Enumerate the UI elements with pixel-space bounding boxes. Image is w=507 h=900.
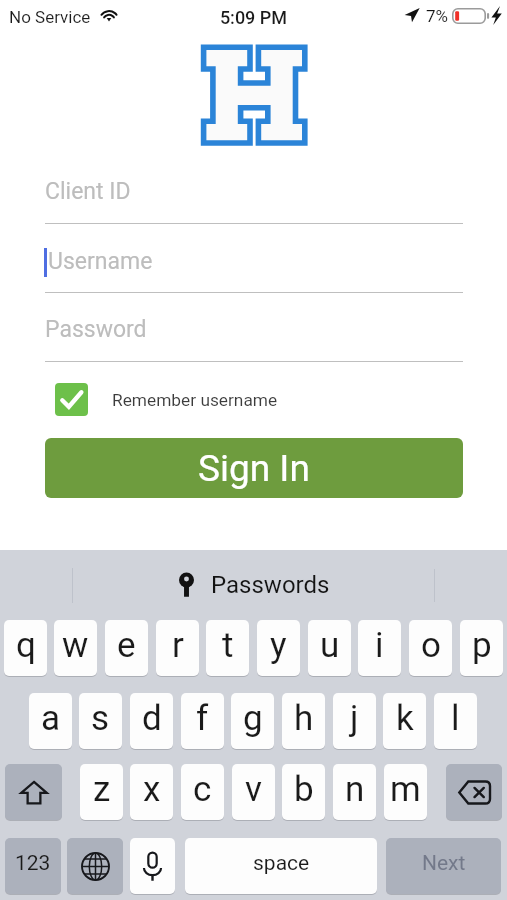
button[interactable]: Passwords [178, 571, 330, 599]
button[interactable]: Dictate [130, 838, 175, 894]
button[interactable]: z [80, 764, 123, 820]
button[interactable]: Client ID [45, 173, 463, 224]
staticText: k [396, 698, 414, 739]
staticText: w [62, 625, 89, 666]
button[interactable]: Sign In [45, 438, 463, 498]
button[interactable]: space [185, 838, 377, 894]
button[interactable]: n [333, 764, 376, 820]
staticText: Username [48, 248, 153, 275]
staticText: 7% [426, 6, 449, 26]
button[interactable]: g [231, 693, 274, 749]
button[interactable]: k [383, 693, 426, 749]
staticText: m [390, 769, 421, 810]
button[interactable]: Username [45, 242, 463, 293]
staticText: e [117, 625, 136, 666]
button[interactable]: s [79, 693, 122, 749]
staticText: Sign In [198, 447, 310, 490]
staticText: u [320, 625, 340, 666]
button[interactable]: u [308, 620, 351, 676]
button[interactable]: r [156, 620, 199, 676]
staticText: c [193, 769, 212, 810]
button[interactable]: j [333, 693, 376, 749]
button[interactable]: l [434, 693, 477, 749]
staticText: d [142, 698, 162, 739]
button[interactable]: a [29, 693, 72, 749]
button[interactable]: f [181, 693, 224, 749]
staticText: f [196, 698, 209, 739]
staticText: t [222, 625, 234, 666]
staticText: x [143, 769, 161, 810]
button[interactable]: Password [45, 311, 463, 362]
button[interactable]: y [257, 620, 300, 676]
button[interactable]: Shift [5, 764, 62, 820]
button[interactable]: 123 [5, 838, 61, 894]
button[interactable]: q [4, 620, 47, 676]
button[interactable]: v [232, 764, 275, 820]
staticText: y [270, 625, 287, 666]
staticText: l [451, 698, 460, 739]
button[interactable]: d [130, 693, 173, 749]
staticText: n [345, 769, 365, 810]
button[interactable]: Change keyboard [67, 838, 123, 894]
button[interactable]: i [358, 620, 401, 676]
staticText: Next [422, 851, 466, 876]
staticText: Remember username [112, 390, 278, 410]
staticText: Password [45, 316, 147, 343]
staticText: a [41, 698, 61, 739]
button[interactable]: m [384, 764, 427, 820]
button[interactable]: c [181, 764, 224, 820]
button[interactable]: t [206, 620, 249, 676]
button[interactable]: Remember username [55, 383, 278, 416]
staticText: h [294, 698, 314, 739]
staticText: g [243, 698, 263, 739]
staticText: p [472, 625, 492, 666]
button[interactable]: e [105, 620, 148, 676]
button[interactable]: b [282, 764, 325, 820]
staticText: 5:09 PM [0, 7, 507, 28]
staticText: z [93, 769, 111, 810]
staticText: Passwords [211, 571, 330, 599]
button[interactable]: o [409, 620, 452, 676]
button[interactable]: Backspace [446, 764, 502, 820]
staticText: i [375, 625, 384, 666]
button[interactable]: Next [386, 838, 501, 894]
button[interactable]: w [54, 620, 97, 676]
button[interactable]: h [282, 693, 325, 749]
staticText: v [245, 769, 262, 810]
staticText: q [16, 625, 36, 666]
staticText: 123 [15, 851, 51, 876]
button[interactable]: p [460, 620, 503, 676]
staticText: s [91, 698, 110, 739]
staticText: Client ID [45, 178, 131, 205]
staticText: No Service [9, 7, 91, 27]
button[interactable]: x [130, 764, 173, 820]
staticText: r [172, 625, 184, 666]
staticText: b [294, 769, 314, 810]
staticText: space [253, 851, 310, 876]
staticText: j [350, 698, 359, 739]
staticText: o [421, 625, 441, 666]
